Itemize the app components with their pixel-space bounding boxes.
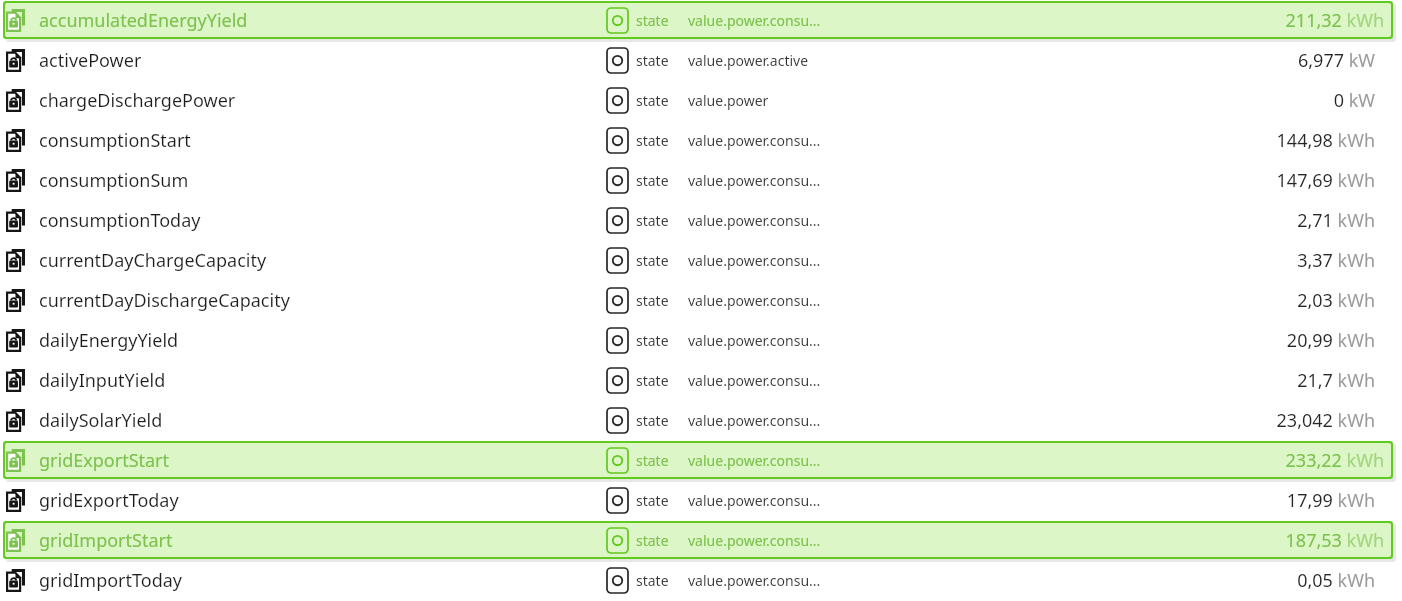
other: Object state list	[0, 0, 1402, 601]
staticText: consumptionSum	[39, 168, 607, 193]
button[interactable]: dailyInputYield	[0, 360, 1402, 400]
button[interactable]: dailySolarYield	[0, 400, 1402, 440]
staticText: 23,042 kWh	[1276, 408, 1375, 433]
staticText: 187,53 kWh	[1285, 528, 1384, 553]
staticText: consumptionToday	[39, 208, 607, 233]
staticText: gridImportStart	[39, 528, 607, 553]
staticText: value.power.consu...	[688, 571, 1228, 590]
staticText: state	[636, 251, 688, 270]
staticText: gridImportToday	[39, 568, 607, 593]
button[interactable]: currentDayChargeCapacity	[0, 240, 1402, 280]
button[interactable]: currentDayDischargeCapacity	[0, 280, 1402, 320]
button[interactable]: gridExportStart	[0, 440, 1402, 480]
staticText: 2,71 kWh	[1297, 208, 1375, 233]
button[interactable]: chargeDischargePower	[0, 80, 1402, 120]
staticText: 21,7 kWh	[1297, 368, 1375, 393]
staticText: state	[636, 11, 688, 30]
staticText: value.power.consu...	[688, 451, 1228, 470]
staticText: 20,99 kWh	[1286, 328, 1375, 353]
staticText: 144,98 kWh	[1276, 128, 1375, 153]
button[interactable]: dailyEnergyYield	[0, 320, 1402, 360]
staticText: value.power.consu...	[688, 331, 1228, 350]
staticText: state	[636, 51, 688, 70]
staticText: 211,32 kWh	[1285, 8, 1384, 33]
staticText: value.power.consu...	[688, 171, 1228, 190]
staticText: value.power.consu...	[688, 211, 1228, 230]
staticText: value.power.consu...	[688, 251, 1228, 270]
staticText: state	[636, 491, 688, 510]
button[interactable]: consumptionStart	[0, 120, 1402, 160]
staticText: gridExportStart	[39, 448, 607, 473]
staticText: state	[636, 331, 688, 350]
staticText: state	[636, 371, 688, 390]
staticText: state	[636, 571, 688, 590]
staticText: value.power.consu...	[688, 411, 1228, 430]
staticText: 0,05 kWh	[1297, 568, 1375, 593]
staticText: activePower	[39, 48, 607, 73]
staticText: value.power.consu...	[688, 11, 1228, 30]
staticText: 147,69 kWh	[1276, 168, 1375, 193]
staticText: dailyEnergyYield	[39, 328, 607, 353]
button[interactable]: consumptionToday	[0, 200, 1402, 240]
staticText: value.power.consu...	[688, 291, 1228, 310]
staticText: 233,22 kWh	[1285, 448, 1384, 473]
staticText: gridExportToday	[39, 488, 607, 513]
staticText: dailySolarYield	[39, 408, 607, 433]
staticText: value.power.consu...	[688, 371, 1228, 390]
staticText: 0 kW	[1333, 88, 1375, 113]
staticText: dailyInputYield	[39, 368, 607, 393]
button[interactable]: activePower	[0, 40, 1402, 80]
staticText: state	[636, 531, 688, 550]
button[interactable]: consumptionSum	[0, 160, 1402, 200]
staticText: state	[636, 91, 688, 110]
staticText: chargeDischargePower	[39, 88, 607, 113]
staticText: value.power.consu...	[688, 531, 1228, 550]
staticText: 3,37 kWh	[1297, 248, 1375, 273]
staticText: currentDayChargeCapacity	[39, 248, 607, 273]
staticText: value.power	[688, 91, 1228, 110]
staticText: state	[636, 451, 688, 470]
staticText: 6,977 kW	[1297, 48, 1375, 73]
staticText: value.power.consu...	[688, 491, 1228, 510]
staticText: value.power.consu...	[688, 131, 1228, 150]
button[interactable]: gridExportToday	[0, 480, 1402, 520]
staticText: accumulatedEnergyYield	[39, 8, 607, 33]
staticText: state	[636, 171, 688, 190]
staticText: value.power.active	[688, 51, 1228, 70]
staticText: state	[636, 131, 688, 150]
staticText: currentDayDischargeCapacity	[39, 288, 607, 313]
staticText: state	[636, 291, 688, 310]
staticText: 17,99 kWh	[1286, 488, 1375, 513]
button[interactable]: gridImportStart	[0, 520, 1402, 560]
staticText: 2,03 kWh	[1297, 288, 1375, 313]
staticText: consumptionStart	[39, 128, 607, 153]
button[interactable]: accumulatedEnergyYield	[0, 0, 1402, 40]
staticText: state	[636, 211, 688, 230]
button[interactable]: gridImportToday	[0, 560, 1402, 600]
staticText: state	[636, 411, 688, 430]
